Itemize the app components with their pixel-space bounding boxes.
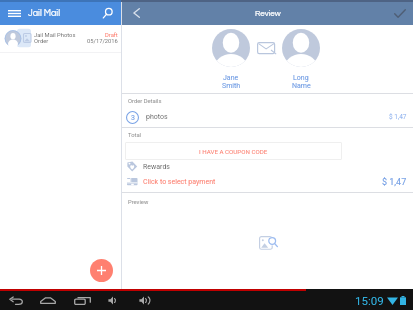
staticText: I HAVE A COUPON CODE: [199, 148, 268, 155]
button[interactable]: Jail Mail Photos: [0, 25, 121, 52]
staticText: Smith: [222, 82, 241, 90]
button[interactable]: Navigation button: [38, 291, 58, 310]
other: Home: [40, 297, 56, 304]
button[interactable]: Confirm: [390, 3, 410, 23]
button[interactable]: Open navigation menu: [3, 2, 25, 24]
button[interactable]: Navigation button: [104, 291, 124, 310]
staticText: Order: [34, 38, 49, 45]
staticText: $ 1,47: [382, 177, 407, 188]
staticText: 3: [131, 114, 135, 122]
button[interactable]: 3: [122, 107, 413, 127]
button[interactable]: Search: [96, 2, 118, 24]
staticText: 05/17/2016: [87, 38, 118, 45]
other: Back: [9, 297, 24, 305]
staticText: Order Details: [128, 98, 162, 105]
staticText: Review: [255, 9, 281, 17]
button[interactable]: Compose new mail: [90, 259, 113, 282]
staticText: Jail Mail Photos: [34, 32, 76, 39]
button[interactable]: Navigation button: [135, 291, 155, 310]
staticText: photos: [146, 113, 168, 121]
other: Recent apps: [74, 297, 91, 305]
button[interactable]: Rewards: [122, 160, 413, 173]
staticText: Jail Mail: [28, 9, 61, 18]
button[interactable]: Back: [126, 3, 146, 23]
staticText: Draft: [105, 32, 118, 39]
other: Volume down: [108, 296, 121, 305]
staticText: Total: [128, 132, 141, 139]
staticText: Long: [293, 74, 309, 82]
button[interactable]: I HAVE A COUPON CODE: [125, 142, 342, 160]
staticText: Jane: [223, 74, 239, 82]
staticText: Click to select payment: [143, 178, 216, 186]
button[interactable]: Click to select payment: [122, 174, 413, 190]
button[interactable]: Navigation button: [72, 291, 92, 310]
staticText: Rewards: [143, 163, 170, 171]
staticText: Preview: [128, 199, 149, 206]
staticText: Name: [292, 82, 311, 90]
other: Volume up: [139, 296, 152, 305]
staticText: $ 1,47: [389, 113, 407, 121]
staticText: 15:09: [355, 294, 384, 307]
button[interactable]: Navigation button: [6, 291, 26, 310]
